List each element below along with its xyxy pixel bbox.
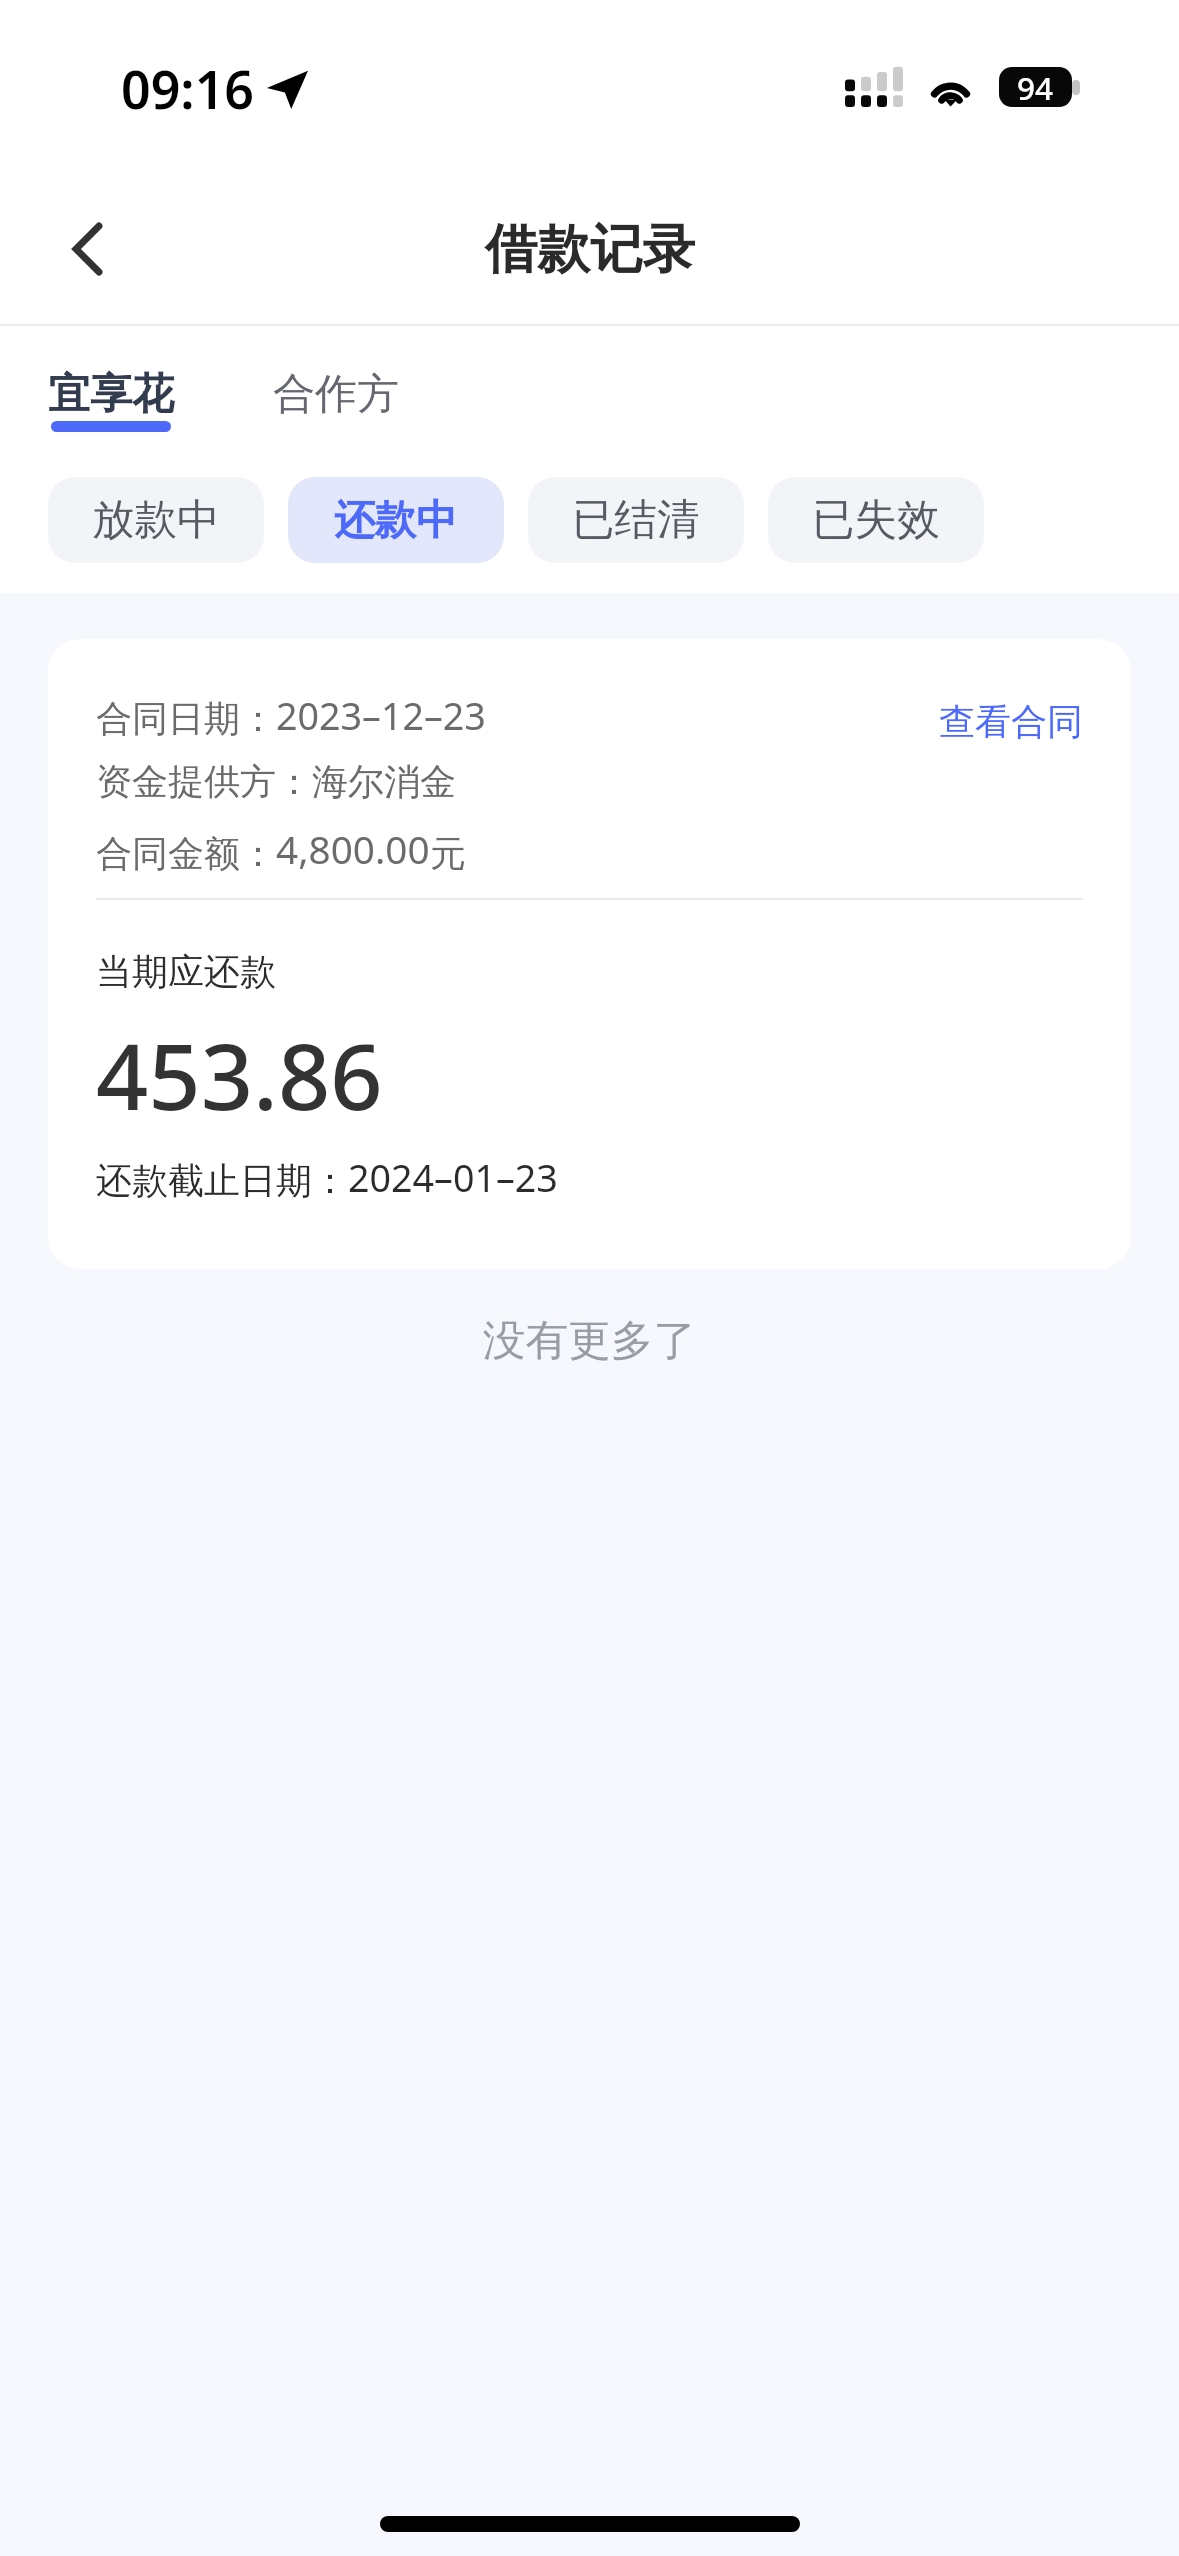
staticText: 宜享花 (48, 368, 174, 421)
staticText: 海尔消金 (312, 759, 456, 804)
staticText: 2023–12–23 (276, 690, 486, 741)
staticText: 还款截止日期： (96, 1158, 348, 1203)
staticText: 合同日期： (96, 696, 276, 741)
staticText: 09:16 (121, 54, 255, 125)
button[interactable]: 合同日期： (48, 639, 1131, 1269)
staticText: 合同金额： (96, 831, 276, 876)
staticText: 453.86 (96, 1012, 383, 1137)
staticText: 查看合同 (939, 699, 1083, 744)
button[interactable]: 已结清 (528, 477, 744, 563)
button[interactable]: 查看合同 (933, 690, 1089, 753)
staticText: 元 (430, 831, 466, 876)
staticText: 没有更多了 (0, 1314, 1179, 1368)
button[interactable]: 合作方 (273, 368, 399, 432)
button[interactable]: 还款中 (288, 477, 504, 563)
staticText: 2024–01–23 (348, 1152, 558, 1203)
staticText: 当期应还款 (96, 949, 276, 994)
staticText: 借款记录 (485, 216, 695, 282)
staticText: 还款中 (334, 494, 458, 546)
staticText: 4,800.00 (276, 823, 430, 876)
staticText: 放款中 (92, 493, 220, 547)
staticText: 合作方 (273, 368, 399, 421)
staticText: 已结清 (572, 493, 700, 547)
button[interactable]: 放款中 (48, 477, 264, 563)
button[interactable]: Back (21, 183, 153, 315)
button[interactable]: 已失效 (768, 477, 984, 563)
staticText: 94 (1017, 67, 1054, 106)
button[interactable]: 宜享花 (48, 368, 174, 432)
staticText: 资金提供方： (96, 759, 312, 804)
staticText: 已失效 (812, 493, 940, 547)
